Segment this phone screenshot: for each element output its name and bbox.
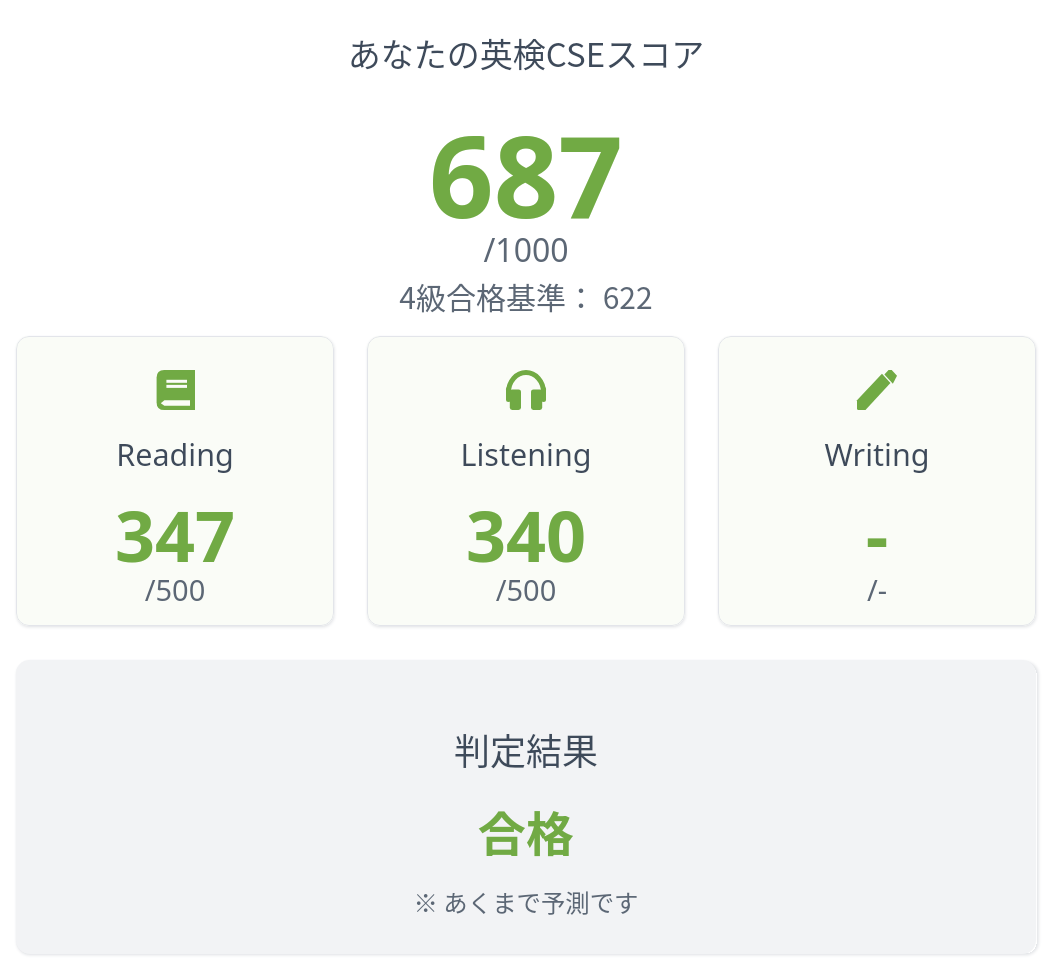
other: Listening — [506, 370, 546, 410]
staticText: /500 — [367, 570, 685, 609]
staticText: 判定結果 — [16, 723, 1036, 775]
staticText: Writing — [718, 433, 1036, 475]
staticText: あなたの英検CSEスコア — [0, 29, 1052, 77]
other: Writing — [857, 370, 897, 410]
staticText: 347 — [16, 487, 334, 582]
button[interactable]: Writing — [718, 336, 1036, 626]
staticText: 687 — [0, 97, 1052, 251]
button[interactable]: Reading — [16, 336, 334, 626]
button[interactable]: Listening — [367, 336, 685, 626]
staticText: ※ あくまで予測です — [16, 884, 1036, 919]
staticText: Reading — [16, 433, 334, 475]
staticText: - — [718, 487, 1036, 582]
staticText: /500 — [16, 570, 334, 609]
staticText: /- — [718, 570, 1036, 609]
staticText: 合格 — [16, 796, 1036, 866]
staticText: 4級合格基準： 622 — [0, 274, 1052, 317]
staticText: /1000 — [0, 228, 1052, 272]
staticText: 340 — [367, 487, 685, 582]
staticText: Listening — [367, 433, 685, 475]
other: Reading — [155, 370, 195, 410]
